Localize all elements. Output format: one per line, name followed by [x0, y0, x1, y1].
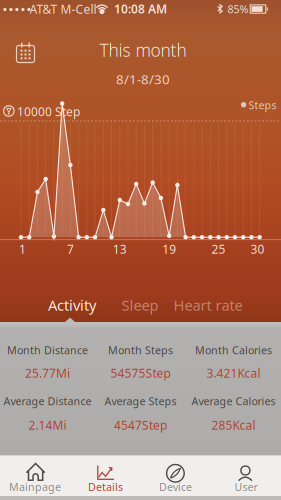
staticText: Sleep: [121, 295, 158, 315]
staticText: Month Steps: [108, 343, 173, 357]
button[interactable]: Sleep: [109, 292, 171, 318]
staticText: Device: [159, 480, 192, 494]
staticText: User: [234, 480, 257, 494]
staticText: Heart rate: [173, 295, 242, 315]
staticText: 4547Step: [114, 417, 167, 433]
staticText: Average Calories: [191, 394, 275, 408]
staticText: 85%: [227, 2, 248, 16]
staticText: Details: [88, 480, 123, 494]
staticText: AT&T M-Cell: [29, 1, 96, 17]
staticText: 19: [162, 241, 176, 257]
staticText: 25.77Mi: [25, 365, 70, 381]
button[interactable]: Mainpage: [0, 455, 70, 500]
staticText: 285Kcal: [211, 417, 255, 433]
staticText: 3.421Kcal: [206, 365, 260, 381]
staticText: 54575Step: [110, 365, 170, 381]
button[interactable]: Device: [141, 455, 211, 500]
button[interactable]: Details: [70, 455, 140, 500]
button[interactable]: User: [211, 455, 281, 500]
staticText: 2.14Mi: [28, 417, 66, 433]
staticText: 1: [19, 241, 26, 257]
staticText: This month: [99, 38, 186, 61]
staticText: Average Steps: [104, 394, 176, 408]
staticText: 10:08 AM: [114, 1, 167, 17]
staticText: 7: [67, 241, 74, 257]
staticText: Mainpage: [9, 480, 61, 494]
button[interactable]: [14, 41, 36, 65]
staticText: 10000 Step: [17, 103, 80, 119]
staticText: Month Calories: [195, 343, 272, 357]
staticText: 13: [113, 241, 127, 257]
staticText: Steps: [248, 98, 276, 112]
staticText: 8/1-8/30: [116, 70, 170, 88]
button[interactable]: Activity: [38, 292, 106, 318]
staticText: 25: [211, 241, 225, 257]
staticText: Average Distance: [3, 394, 91, 408]
staticText: Month Distance: [7, 343, 88, 357]
staticText: 30: [250, 241, 264, 257]
staticText: Activity: [48, 295, 96, 315]
button[interactable]: Heart rate: [172, 292, 244, 318]
